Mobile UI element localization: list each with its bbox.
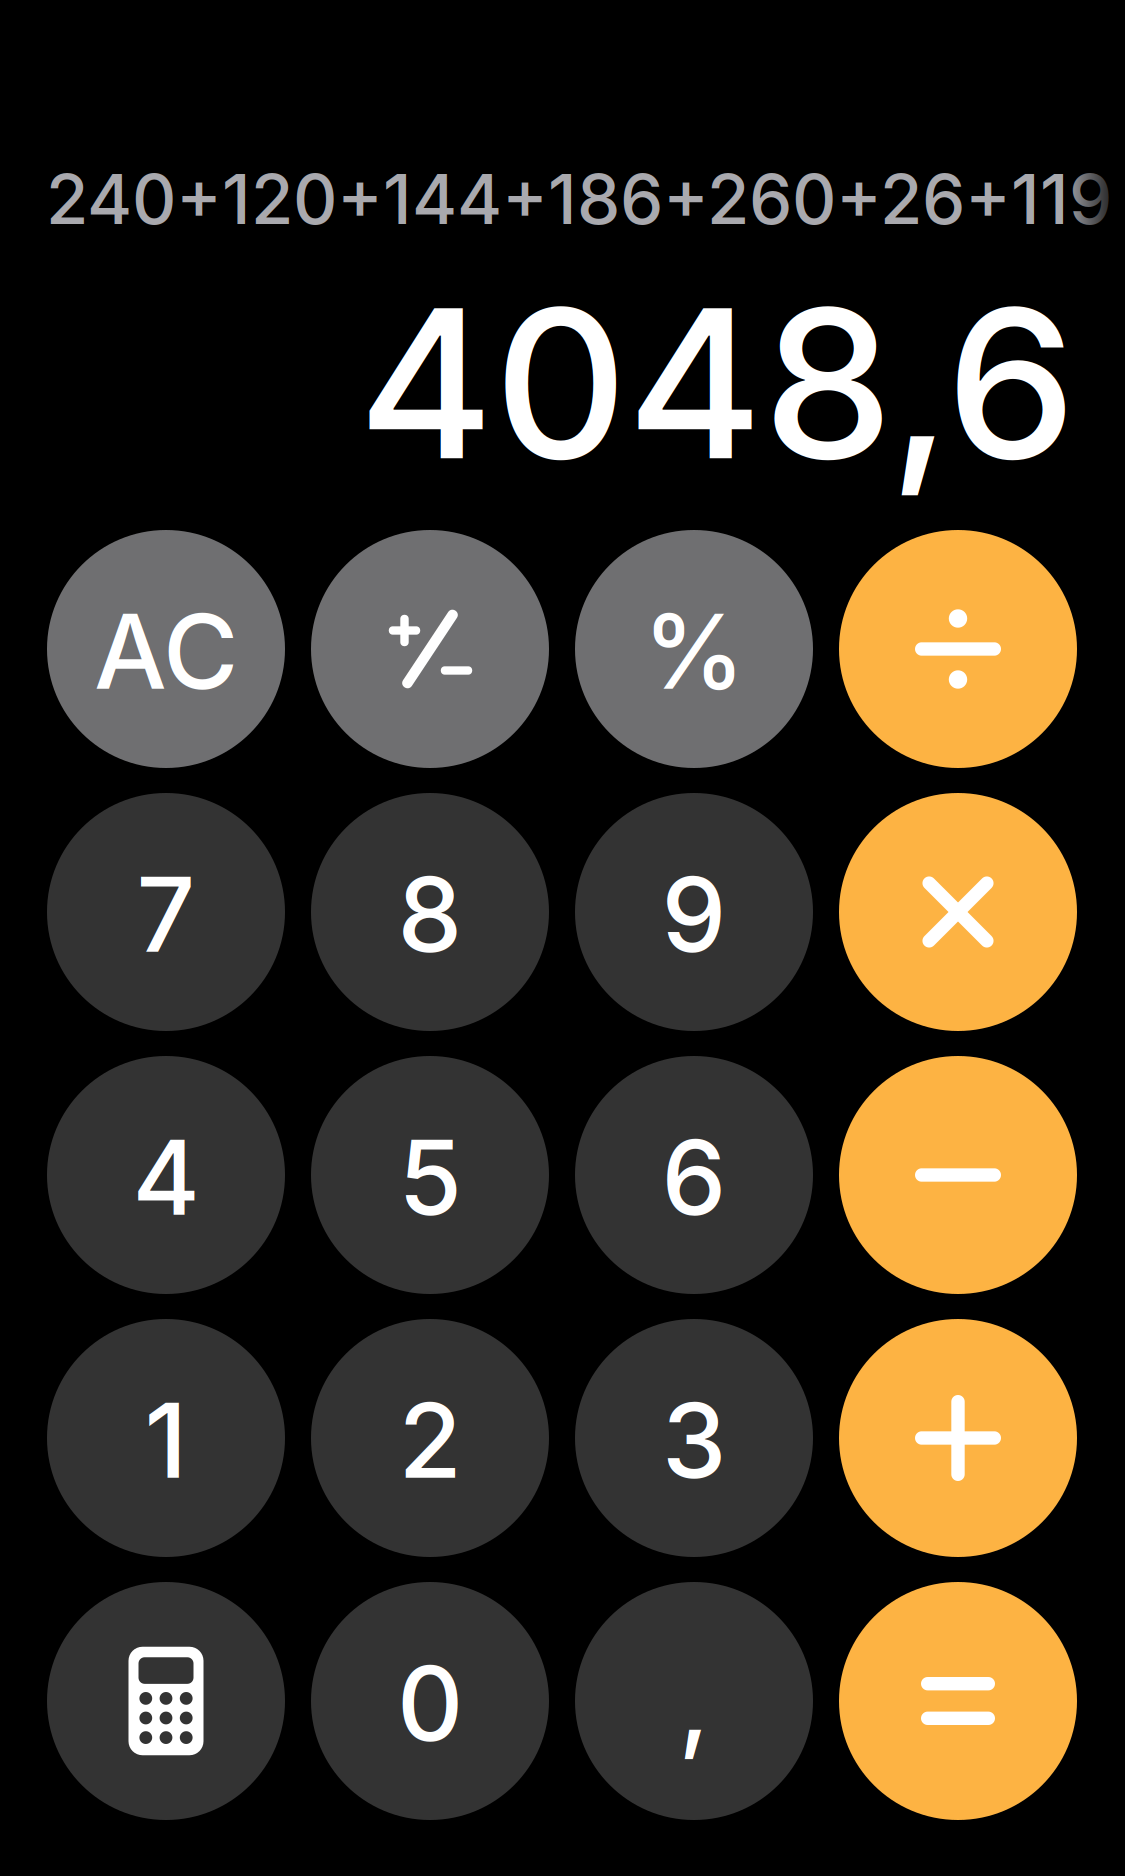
button[interactable]: 0: [311, 1582, 549, 1820]
button[interactable]: 4: [47, 1056, 285, 1294]
button[interactable]: ,: [575, 1582, 813, 1820]
button[interactable]: Divide: [839, 530, 1077, 768]
button[interactable]: Calculator: [47, 1582, 285, 1820]
button[interactable]: Multiply: [839, 793, 1077, 1031]
button[interactable]: 2: [311, 1319, 549, 1557]
button[interactable]: 7: [47, 793, 285, 1031]
button[interactable]: Plus minus: [311, 530, 549, 768]
staticText: 0: [397, 1641, 463, 1766]
staticText: 240+120+144+186+260+26+119: [46, 157, 1112, 241]
staticText: 3: [662, 1378, 726, 1503]
staticText: 1: [144, 1378, 187, 1503]
button[interactable]: 3: [575, 1319, 813, 1557]
button[interactable]: %: [575, 530, 813, 768]
button[interactable]: Subtract: [839, 1056, 1077, 1294]
staticText: 9: [661, 852, 726, 977]
staticText: 7: [136, 852, 195, 977]
staticText: ,: [678, 1641, 709, 1766]
button[interactable]: 5: [311, 1056, 549, 1294]
staticText: 4048,6: [358, 258, 1076, 508]
button[interactable]: AC: [47, 530, 285, 768]
button[interactable]: Equals: [839, 1582, 1077, 1820]
staticText: 8: [397, 852, 462, 977]
button[interactable]: Add: [839, 1319, 1077, 1557]
button[interactable]: 6: [575, 1056, 813, 1294]
staticText: AC: [94, 589, 238, 714]
staticText: 2: [398, 1378, 461, 1503]
button[interactable]: 1: [47, 1319, 285, 1557]
staticText: %: [643, 589, 745, 714]
staticText: 5: [398, 1115, 461, 1240]
button[interactable]: 9: [575, 793, 813, 1031]
staticText: 6: [661, 1115, 726, 1240]
button[interactable]: 8: [311, 793, 549, 1031]
staticText: 4: [132, 1115, 199, 1240]
